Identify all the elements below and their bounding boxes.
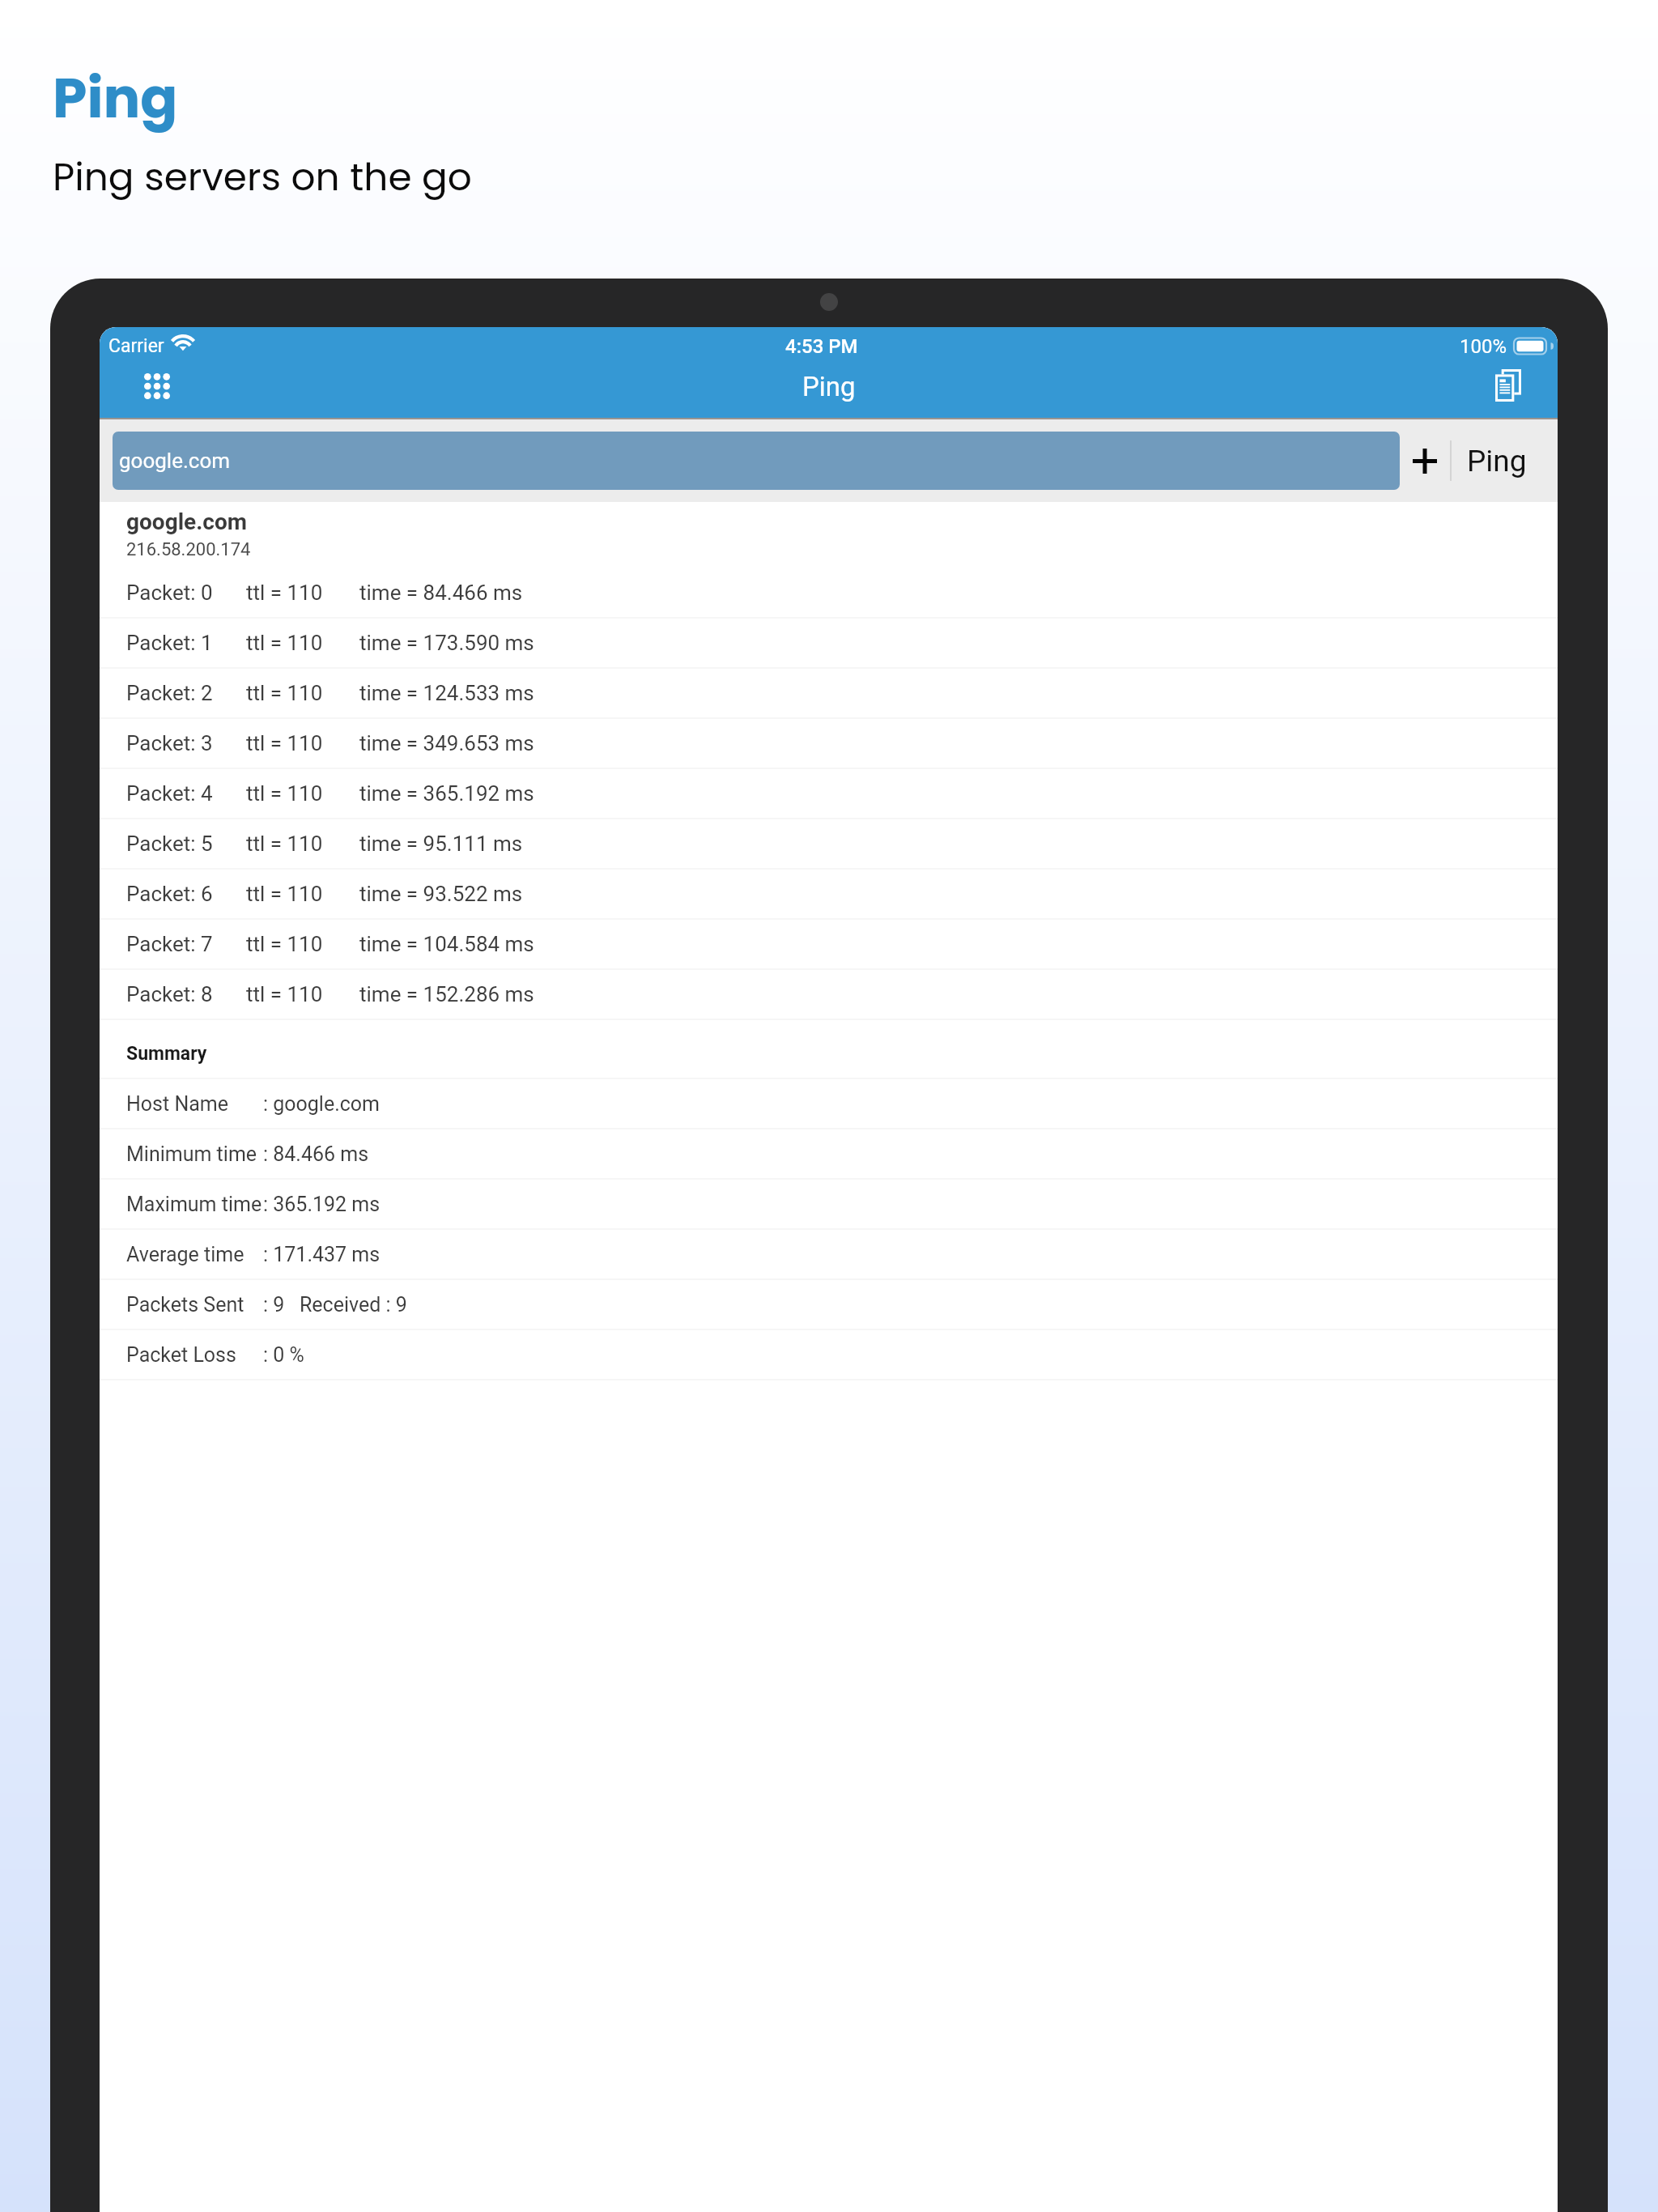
staticText: : 171.437 ms bbox=[263, 1243, 380, 1266]
staticText: Ping bbox=[802, 371, 856, 402]
staticText: 216.58.200.174 bbox=[126, 539, 251, 560]
staticText: : 84.466 ms bbox=[263, 1142, 369, 1166]
button[interactable]: Menu bbox=[132, 361, 182, 411]
staticText: Minimum time bbox=[126, 1142, 257, 1166]
staticText: Packet: 2 bbox=[126, 681, 213, 705]
staticText: time = 365.192 ms bbox=[359, 781, 534, 806]
button[interactable]: Packet: 8 bbox=[100, 970, 1558, 1019]
staticText: 4:53 PM bbox=[785, 335, 858, 358]
button[interactable]: Packet: 1 bbox=[100, 619, 1558, 667]
staticText: ttl = 110 bbox=[246, 581, 323, 605]
button[interactable]: google.com bbox=[113, 432, 1400, 490]
staticText: ttl = 110 bbox=[246, 631, 323, 655]
staticText: ttl = 110 bbox=[246, 932, 323, 956]
staticText: Packets Sent bbox=[126, 1293, 244, 1317]
staticText: Ping bbox=[1467, 444, 1527, 479]
staticText: Host Name bbox=[126, 1092, 228, 1116]
staticText: Packet: 8 bbox=[126, 982, 213, 1006]
staticText: Packet: 1 bbox=[126, 631, 213, 655]
button[interactable]: google.com bbox=[100, 502, 1558, 568]
button[interactable]: Copy bbox=[1483, 360, 1533, 410]
button[interactable]: Packet: 0 bbox=[100, 568, 1558, 617]
staticText: ttl = 110 bbox=[246, 982, 323, 1006]
staticText: time = 84.466 ms bbox=[359, 581, 523, 605]
button[interactable]: Packet: 2 bbox=[100, 669, 1558, 717]
staticText: Packet: 0 bbox=[126, 581, 213, 605]
button[interactable]: Packet: 6 bbox=[100, 870, 1558, 918]
staticText: Maximum time bbox=[126, 1193, 262, 1216]
staticText: time = 152.286 ms bbox=[359, 982, 534, 1006]
button[interactable]: Packet Loss bbox=[100, 1330, 1558, 1379]
staticText: : 365.192 ms bbox=[263, 1193, 380, 1216]
staticText: Carrier bbox=[108, 335, 164, 357]
staticText: Summary bbox=[126, 1043, 207, 1065]
staticText: ttl = 110 bbox=[246, 681, 323, 705]
button[interactable]: Summary bbox=[100, 1020, 1558, 1078]
button[interactable]: Average time bbox=[100, 1230, 1558, 1278]
staticText: Packet: 3 bbox=[126, 731, 213, 755]
button[interactable]: Add host bbox=[1400, 419, 1450, 502]
staticText: google.com bbox=[126, 508, 248, 535]
staticText: time = 124.533 ms bbox=[359, 681, 534, 705]
staticText: ttl = 110 bbox=[246, 781, 323, 806]
button[interactable]: Packet: 7 bbox=[100, 920, 1558, 968]
staticText: : 9 Received : 9 bbox=[263, 1293, 407, 1317]
button[interactable]: Packet: 4 bbox=[100, 769, 1558, 818]
staticText: google.com bbox=[119, 449, 231, 473]
staticText: ttl = 110 bbox=[246, 882, 323, 906]
staticText: : 0 % bbox=[263, 1343, 304, 1367]
staticText: Packet: 6 bbox=[126, 882, 213, 906]
staticText: Ping servers on the go bbox=[53, 151, 472, 204]
button[interactable]: Packet: 3 bbox=[100, 719, 1558, 768]
staticText: 100% bbox=[1460, 335, 1507, 358]
staticText: time = 93.522 ms bbox=[359, 882, 523, 906]
button[interactable]: Minimum time bbox=[100, 1129, 1558, 1178]
staticText: Ping bbox=[53, 60, 178, 137]
staticText: Average time bbox=[126, 1243, 244, 1266]
staticText: Packet: 7 bbox=[126, 932, 213, 956]
button[interactable]: Maximum time bbox=[100, 1180, 1558, 1228]
staticText: time = 104.584 ms bbox=[359, 932, 534, 956]
staticText: Packet Loss bbox=[126, 1343, 236, 1367]
button[interactable]: Ping bbox=[1452, 419, 1558, 502]
staticText: Packet: 4 bbox=[126, 781, 213, 806]
staticText: ttl = 110 bbox=[246, 731, 323, 755]
staticText: time = 173.590 ms bbox=[359, 631, 534, 655]
button[interactable]: Packet: 5 bbox=[100, 819, 1558, 868]
staticText: : google.com bbox=[263, 1092, 380, 1116]
staticText: ttl = 110 bbox=[246, 832, 323, 856]
button[interactable]: Packets Sent bbox=[100, 1280, 1558, 1329]
staticText: Packet: 5 bbox=[126, 832, 213, 856]
staticText: time = 349.653 ms bbox=[359, 731, 534, 755]
staticText: time = 95.111 ms bbox=[359, 832, 523, 856]
button[interactable]: Host Name bbox=[100, 1079, 1558, 1128]
